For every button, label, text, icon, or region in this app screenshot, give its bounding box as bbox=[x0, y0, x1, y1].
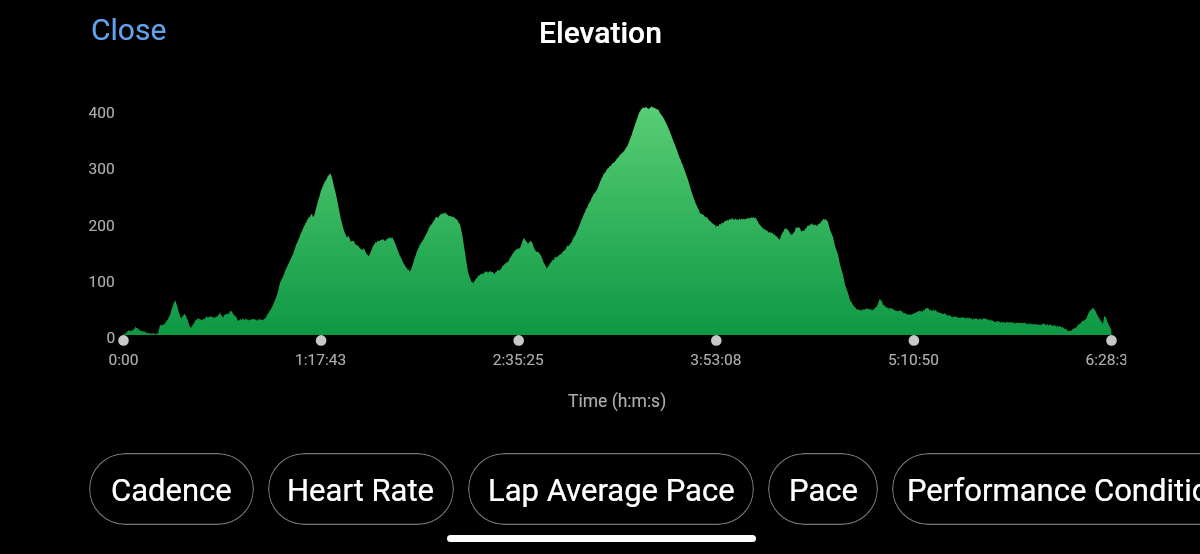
staticText: Performance Condition bbox=[907, 472, 1200, 508]
staticText: Pace bbox=[789, 472, 858, 508]
button[interactable]: Heart Rate bbox=[268, 453, 454, 525]
other: Home indicator bbox=[447, 535, 756, 542]
staticText: Heart Rate bbox=[287, 472, 435, 508]
staticText: Elevation bbox=[539, 15, 662, 50]
button[interactable]: Cadence bbox=[89, 453, 254, 525]
button[interactable]: Performance Condition bbox=[892, 453, 1200, 525]
staticText: Cadence bbox=[111, 472, 232, 508]
button[interactable]: Lap Average Pace bbox=[468, 453, 754, 525]
staticText: Lap Average Pace bbox=[488, 472, 735, 508]
button[interactable]: Pace bbox=[768, 453, 878, 525]
button[interactable]: Close bbox=[67, 0, 177, 60]
staticText: Close bbox=[91, 12, 167, 47]
